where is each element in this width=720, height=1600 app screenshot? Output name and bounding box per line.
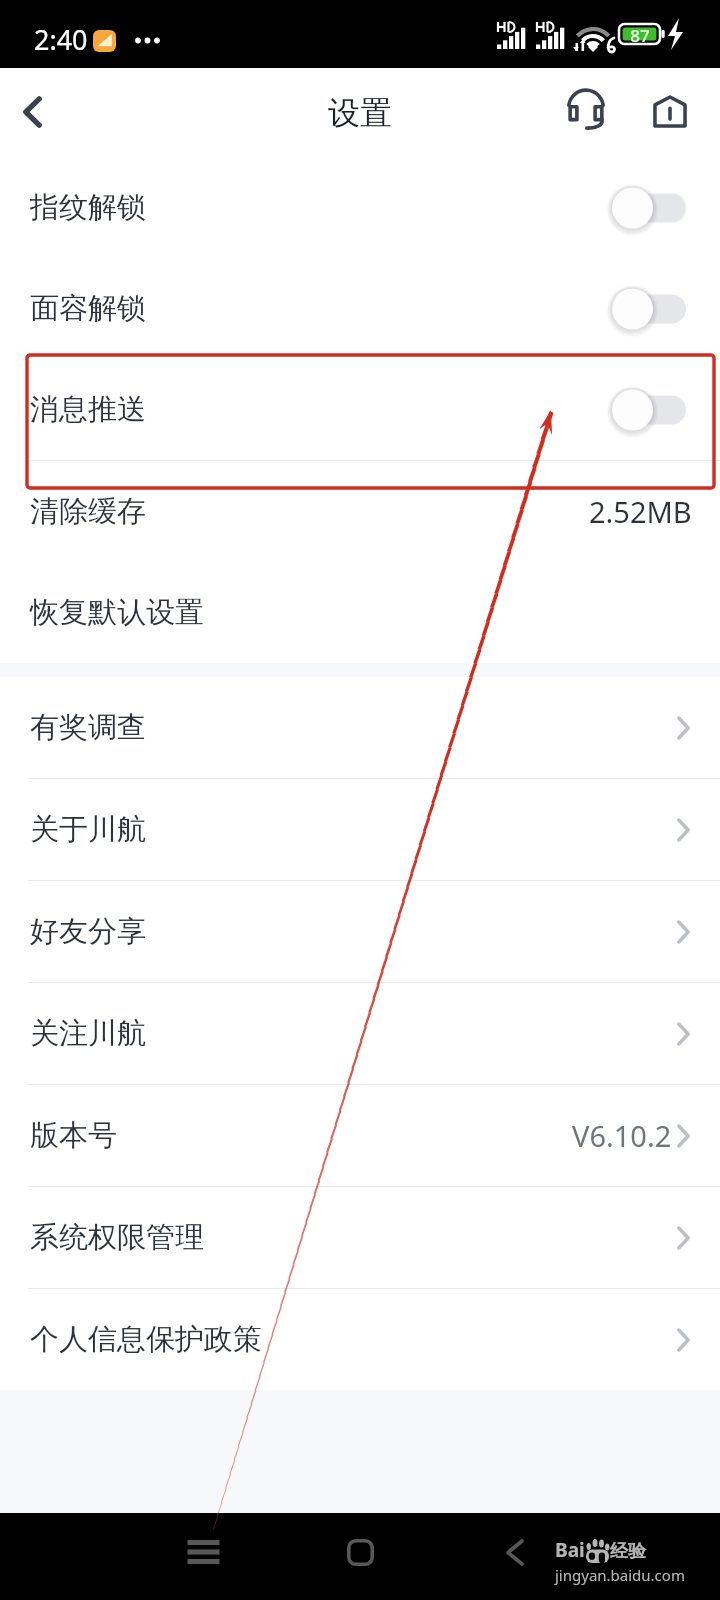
button[interactable]: 有奖调查 (0, 677, 720, 778)
button[interactable]: 系统权限管理 (0, 1187, 720, 1288)
staticText: 个人信息保护政策 (30, 1321, 262, 1358)
button[interactable]: Recent apps (175, 1524, 231, 1580)
staticText: 87 (630, 24, 650, 44)
staticText: 系统权限管理 (30, 1219, 204, 1256)
staticText: Bai (555, 1537, 585, 1563)
staticText: 关注川航 (30, 1015, 146, 1052)
staticText: 清除缓存 (30, 493, 146, 530)
button[interactable]: 指纹解锁 (0, 157, 720, 258)
staticText: 2.52MB (589, 492, 692, 531)
button[interactable]: 关注川航 (0, 983, 720, 1084)
button[interactable]: Back (0, 76, 64, 148)
staticText: 设置 (328, 93, 392, 133)
button[interactable]: Customer service (552, 77, 620, 145)
staticText: 经验 (610, 1540, 646, 1563)
button[interactable]: 清除缓存 (0, 461, 720, 562)
staticText: 恢复默认设置 (30, 594, 204, 631)
button[interactable]: 关于川航 (0, 779, 720, 880)
button[interactable]: 个人信息保护政策 (0, 1289, 720, 1390)
staticText: 有奖调查 (30, 709, 146, 746)
staticText: 版本号 (30, 1117, 117, 1154)
staticText: 关于川航 (30, 811, 146, 848)
staticText: jingyan.baidu.com (555, 1565, 685, 1585)
staticText: 2:40 (34, 21, 88, 58)
staticText: V6.10.2 (572, 1116, 672, 1155)
staticText: 好友分享 (30, 913, 146, 950)
button[interactable]: 恢复默认设置 (0, 562, 720, 663)
staticText: 指纹解锁 (30, 189, 146, 226)
button[interactable]: Home (636, 77, 704, 145)
staticText: 消息推送 (30, 391, 146, 428)
button[interactable]: 面容解锁 (0, 258, 720, 359)
staticText: 面容解锁 (30, 290, 146, 327)
button[interactable]: Home (332, 1524, 388, 1580)
button[interactable]: 消息推送 (0, 359, 720, 460)
button[interactable]: 好友分享 (0, 881, 720, 982)
button[interactable]: Back (487, 1524, 543, 1580)
button[interactable]: 版本号 (0, 1085, 720, 1186)
